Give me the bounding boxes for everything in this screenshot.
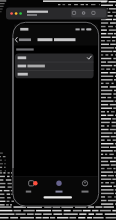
button[interactable]	[51, 178, 67, 194]
button[interactable]	[24, 178, 40, 194]
button[interactable]	[15, 62, 94, 70]
button[interactable]	[71, 9, 106, 18]
button[interactable]	[14, 36, 34, 44]
button[interactable]	[77, 178, 93, 194]
button[interactable]	[15, 53, 94, 62]
button[interactable]	[15, 70, 94, 78]
